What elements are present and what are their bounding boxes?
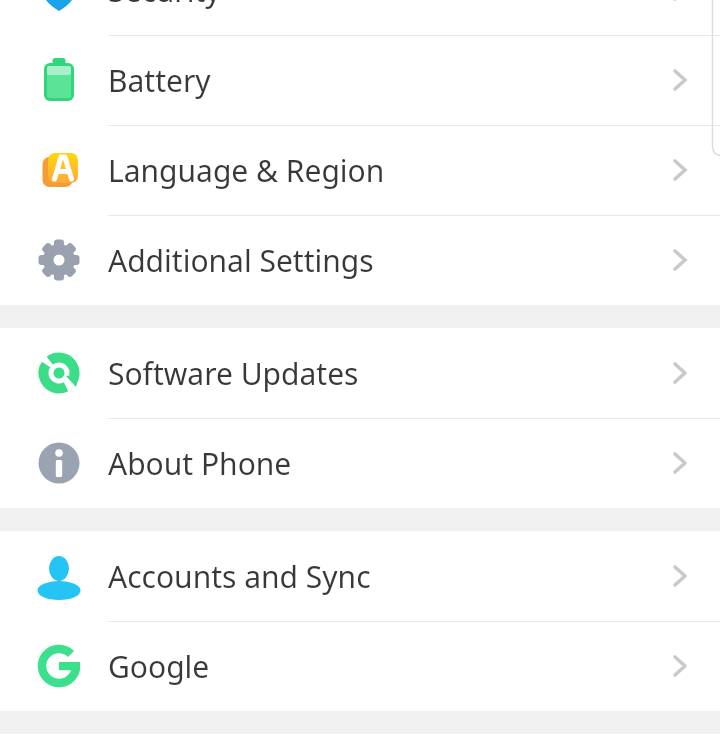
button[interactable]: Google	[0, 621, 720, 711]
staticText: Accounts and Sync	[108, 556, 371, 597]
staticText: Google	[108, 646, 210, 687]
staticText: Software Updates	[108, 353, 359, 394]
button[interactable]: Accounts and Sync	[0, 531, 720, 621]
staticText: Battery	[108, 60, 211, 101]
button[interactable]: Software Updates	[0, 328, 720, 418]
staticText: Language & Region	[108, 150, 385, 191]
staticText: Security	[108, 0, 221, 11]
staticText: Additional Settings	[108, 240, 374, 281]
button[interactable]: Battery	[0, 35, 720, 125]
button[interactable]: Additional Settings	[0, 215, 720, 305]
button[interactable]: Security	[0, 0, 720, 35]
button[interactable]: Language & Region	[0, 125, 720, 215]
staticText: About Phone	[108, 443, 292, 484]
button[interactable]: About Phone	[0, 418, 720, 508]
